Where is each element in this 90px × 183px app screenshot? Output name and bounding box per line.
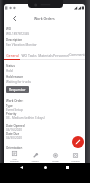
staticText: Description <box>6 38 23 42</box>
staticText: Utilities <box>71 159 80 162</box>
button[interactable]: Utilities <box>65 151 85 163</box>
staticText: WO Tasks <box>21 53 37 58</box>
staticText: Orientation <box>6 146 23 150</box>
button[interactable]: Home <box>42 164 49 171</box>
button[interactable]: WO Tasks <box>21 52 37 59</box>
staticText: Status <box>6 64 15 68</box>
staticText: Type <box>6 104 13 108</box>
staticText: Personnel <box>53 53 69 58</box>
staticText: Materials <box>38 53 53 58</box>
button[interactable]: Edit <box>72 136 84 148</box>
button[interactable]: Back <box>8 11 21 25</box>
staticText: Waiting for trucks <box>6 80 32 84</box>
button[interactable]: Recents <box>64 164 71 171</box>
staticText: Fan Vibration Monitor <box>6 43 37 47</box>
staticText: Hold reason <box>6 75 23 79</box>
staticText: General <box>6 53 19 58</box>
button[interactable]: Back <box>18 164 25 171</box>
button[interactable]: General <box>4 52 21 59</box>
staticText: 03 - Medium (within 3 days) <box>6 116 45 120</box>
staticText: Work Order: <box>6 99 24 103</box>
button[interactable]: Materials <box>37 52 53 59</box>
button[interactable]: Comments <box>69 52 85 59</box>
button[interactable]: WO Browse <box>4 151 25 163</box>
staticText: Hold <box>6 69 13 73</box>
staticText: Comments <box>69 52 85 59</box>
staticText: Travel <box>52 159 59 162</box>
button[interactable]: Personnel <box>53 52 69 59</box>
staticText: Assets <box>31 159 39 162</box>
staticText: Work Orders <box>34 16 55 21</box>
staticText: Priority <box>6 112 17 116</box>
button[interactable]: Travel <box>45 151 65 163</box>
staticText: 04/16/2020 <box>6 128 22 132</box>
staticText: WO Browse <box>10 157 19 163</box>
staticText: Date Opened <box>6 124 25 128</box>
staticText: WO-1897812345 <box>6 32 30 36</box>
staticText: Date Due <box>6 132 20 136</box>
staticText: Event Setup <box>6 108 23 112</box>
staticText: 04/30/2020 <box>6 136 22 140</box>
staticText: WO <box>6 27 12 31</box>
button[interactable]: Requestor <box>6 86 29 93</box>
staticText: Requestor <box>9 87 26 92</box>
button[interactable]: Assets <box>25 151 45 163</box>
